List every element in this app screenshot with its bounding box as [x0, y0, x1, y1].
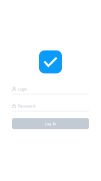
button[interactable]: Log In: [12, 118, 89, 129]
button[interactable]: Password field: [12, 97, 89, 112]
staticText: Password: [18, 103, 35, 108]
staticText: Login: [18, 86, 27, 91]
staticText: Log In: [44, 121, 56, 126]
button[interactable]: Login field: [12, 80, 89, 95]
